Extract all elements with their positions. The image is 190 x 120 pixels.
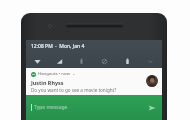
- staticText: Hangouts • now ⌄: [38, 71, 76, 77]
- staticText: 12:08 PM · Mon, Jan 4: [31, 43, 85, 50]
- staticText: Do you want to go see a movie tonight?: [31, 87, 117, 93]
- button[interactable]: Type message: [26, 95, 162, 120]
- staticText: Justin Rhyss: [31, 79, 64, 86]
- button[interactable]: Wi-Fi: [26, 54, 48, 68]
- button[interactable]: Contact photo: [146, 75, 158, 87]
- button[interactable]: Battery saver: [70, 54, 93, 68]
- button[interactable]: Send: [147, 103, 157, 113]
- button[interactable]: Mobile signal: [48, 54, 70, 68]
- button[interactable]: Hangouts • now ⌄: [26, 68, 162, 95]
- button[interactable]: Do not disturb: [93, 54, 116, 68]
- button[interactable]: Expand quick settings: [139, 54, 162, 68]
- staticText: Type message: [34, 104, 147, 111]
- button[interactable]: Battery: [116, 54, 139, 68]
